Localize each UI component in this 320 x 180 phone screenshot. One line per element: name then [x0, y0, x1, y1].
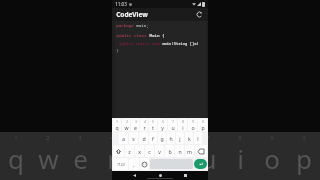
button[interactable]: k: [185, 132, 193, 144]
staticText: 1: [116, 120, 118, 124]
staticText: t: [139, 141, 149, 176]
button[interactable]: 7: [168, 119, 177, 131]
button[interactable]: j: [176, 132, 184, 144]
staticText: 8: [238, 134, 242, 142]
staticText: main(String []a): [162, 41, 199, 46]
staticText: c: [148, 148, 151, 155]
button[interactable]: n: [175, 145, 184, 157]
button[interactable]: Enter: [194, 159, 207, 169]
button[interactable]: 3: [131, 119, 139, 131]
button[interactable]: Backspace: [195, 145, 207, 157]
staticText: 0: [202, 120, 204, 124]
button[interactable]: 0: [198, 119, 207, 131]
staticText: 0: [302, 134, 306, 142]
staticText: x: [138, 148, 141, 155]
staticText: b: [168, 148, 172, 155]
button[interactable]: Back: [131, 172, 138, 179]
staticText: g: [160, 135, 164, 142]
button[interactable]: 9: [188, 119, 197, 131]
staticText: 3: [78, 134, 82, 142]
staticText: o: [264, 141, 280, 176]
staticText: ,: [133, 161, 135, 168]
staticText: r: [107, 141, 118, 176]
button[interactable]: package: [115, 21, 206, 118]
staticText: 11:03: [115, 1, 127, 7]
staticText: CodeView: [116, 10, 148, 19]
staticText: i: [182, 124, 184, 131]
button[interactable]: 5: [149, 119, 157, 131]
staticText: j: [179, 135, 181, 142]
staticText: p: [201, 124, 205, 131]
button[interactable]: 8: [178, 119, 187, 131]
staticText: 8: [182, 120, 184, 124]
button[interactable]: f: [149, 132, 157, 144]
staticText: a: [122, 135, 125, 142]
staticText: 6: [162, 120, 164, 124]
staticText: 1: [14, 134, 18, 142]
button[interactable]: 6: [158, 119, 167, 131]
staticText: 3: [135, 120, 137, 124]
staticText: e: [73, 141, 88, 176]
button[interactable]: h: [167, 132, 175, 144]
staticText: f: [152, 135, 154, 142]
button[interactable]: Home: [157, 172, 164, 179]
staticText: i: [237, 141, 244, 176]
staticText: 5: [142, 134, 146, 142]
staticText: main;: [136, 23, 149, 29]
button[interactable]: b: [165, 145, 174, 157]
button[interactable]: 4: [140, 119, 148, 131]
staticText: 4: [110, 134, 114, 142]
staticText: 9: [270, 134, 274, 142]
staticText: p: [296, 141, 312, 176]
button[interactable]: d: [139, 132, 148, 144]
button[interactable]: ?123: [113, 158, 128, 170]
staticText: v: [158, 148, 161, 155]
staticText: 9: [192, 120, 194, 124]
staticText: q: [8, 141, 24, 176]
button[interactable]: a: [119, 132, 128, 144]
staticText: q: [115, 124, 119, 131]
button[interactable]: x: [135, 145, 144, 157]
staticText: 5: [152, 120, 154, 124]
staticText: r: [143, 124, 146, 131]
button[interactable]: v: [155, 145, 164, 157]
staticText: public static void: [119, 41, 161, 46]
staticText: l: [197, 135, 199, 142]
staticText: w: [38, 141, 59, 176]
staticText: 6: [174, 134, 178, 142]
button[interactable]: 2: [122, 119, 130, 131]
button[interactable]: Run: [195, 10, 204, 19]
button[interactable]: 1: [113, 119, 121, 131]
staticText: s: [132, 135, 135, 142]
staticText: 2: [126, 120, 128, 124]
staticText: d: [142, 135, 146, 142]
button[interactable]: g: [158, 132, 166, 144]
staticText: u: [200, 141, 217, 176]
button[interactable]: z: [125, 145, 134, 157]
staticText: 7: [206, 134, 210, 142]
button[interactable]: s: [129, 132, 138, 144]
staticText: public class: [116, 33, 147, 39]
button[interactable]: c: [145, 145, 154, 157]
staticText: u: [171, 124, 175, 131]
staticText: 2: [46, 134, 50, 142]
staticText: h: [169, 135, 173, 142]
staticText: 7: [172, 120, 174, 124]
staticText: z: [128, 148, 131, 155]
staticText: n: [178, 148, 182, 155]
staticText: }: [116, 48, 119, 54]
button[interactable]: Shift: [113, 145, 124, 157]
button[interactable]: l: [194, 132, 202, 144]
staticText: e: [134, 124, 137, 131]
staticText: y: [169, 141, 183, 176]
button[interactable]: Emoji: [140, 158, 149, 170]
staticText: o: [191, 124, 195, 131]
staticText: package: [116, 23, 134, 29]
button[interactable]: m: [185, 145, 194, 157]
staticText: Main {: [149, 33, 165, 39]
staticText: m: [187, 148, 192, 155]
button[interactable]: Recents: [182, 172, 189, 179]
staticText: y: [161, 124, 164, 131]
button[interactable]: ,: [129, 158, 139, 170]
